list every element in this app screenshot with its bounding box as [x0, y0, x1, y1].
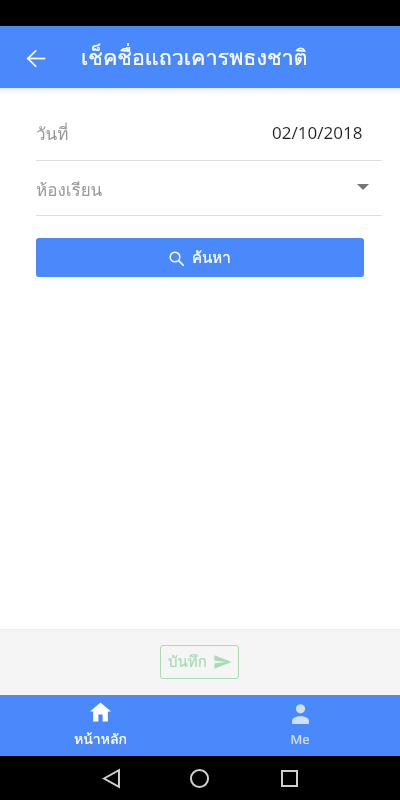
staticText: บันทึก [168, 650, 207, 674]
button[interactable]: Recents [269, 758, 309, 798]
button[interactable]: Back [14, 35, 58, 79]
staticText: หน้าหลัก [74, 728, 127, 750]
button[interactable]: หน้าหลัก [0, 695, 200, 756]
staticText: ค้นหา [192, 246, 231, 270]
button[interactable]: วันที่ [0, 120, 400, 144]
button[interactable]: บันทึก [160, 645, 239, 679]
button[interactable]: ค้นหา [36, 238, 364, 277]
button[interactable]: Me [200, 695, 400, 756]
staticText: วันที่ [36, 120, 69, 144]
button[interactable]: ห้องเรียน [0, 176, 400, 200]
button[interactable]: Home [179, 758, 219, 798]
staticText: ห้องเรียน [36, 176, 103, 200]
staticText: Me [290, 730, 310, 748]
staticText: เช็คชื่อแถวเคารพธงชาติ [81, 40, 308, 74]
staticText: 02/10/2018 [272, 121, 363, 144]
button[interactable]: Back [91, 758, 131, 798]
